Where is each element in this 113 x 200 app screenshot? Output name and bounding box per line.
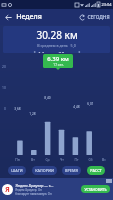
staticText: Пт bbox=[74, 157, 79, 162]
staticText: 1,28 bbox=[29, 112, 36, 116]
button[interactable]: ШАГИ bbox=[8, 166, 26, 175]
staticText: СЕГОДНЯ bbox=[87, 14, 110, 21]
button[interactable]: Previous week bbox=[30, 51, 38, 53]
staticText: 30.28 км bbox=[36, 28, 78, 42]
staticText: 6,01 bbox=[87, 102, 94, 106]
button[interactable]: ВРЕМЯ bbox=[62, 166, 81, 175]
button[interactable]: КАЛОРИИ bbox=[32, 166, 57, 175]
button[interactable]: 6.39 км bbox=[43, 54, 73, 68]
staticText: блокирует навязчивую. Он bbox=[15, 192, 52, 196]
button[interactable]: Back bbox=[0, 9, 16, 25]
staticText: Пн bbox=[15, 157, 20, 162]
staticText: Вт bbox=[31, 157, 35, 162]
staticText: Вс bbox=[102, 157, 106, 162]
staticText: Яндекс.Браузер — с… bbox=[15, 183, 54, 188]
staticText: РАССТ bbox=[90, 168, 102, 173]
staticText: Сб bbox=[88, 157, 93, 162]
staticText: 20 bbox=[2, 64, 6, 69]
staticText: ШАГИ bbox=[11, 168, 23, 173]
button[interactable]: Next week bbox=[75, 51, 83, 53]
staticText: 10 bbox=[2, 85, 6, 90]
staticText: 14 окт. - 20 окт. bbox=[38, 51, 75, 53]
button[interactable]: 30.28 км bbox=[3, 26, 110, 53]
button[interactable]: СЕГОДНЯ bbox=[77, 11, 113, 24]
staticText: КАЛОРИИ bbox=[35, 168, 54, 173]
staticText: Неделя bbox=[16, 12, 42, 22]
staticText: 0 bbox=[4, 106, 6, 111]
staticText: 23:04 bbox=[101, 2, 112, 7]
staticText: 17 окт. bbox=[53, 63, 64, 67]
staticText: Чт bbox=[60, 157, 64, 162]
staticText: Яндекс.Браузер. Он bbox=[15, 188, 42, 192]
staticText: ВРЕМЯ bbox=[65, 168, 78, 173]
staticText: Я bbox=[5, 185, 10, 195]
staticText: Ср bbox=[45, 157, 50, 162]
staticText: УСТАНОВИТЬ bbox=[84, 187, 107, 192]
staticText: 4,48 bbox=[73, 105, 80, 109]
staticText: 6.39 км bbox=[47, 55, 69, 63]
staticText: 8,40 bbox=[44, 96, 51, 100]
button[interactable]: УСТАНОВИТЬ bbox=[81, 185, 110, 193]
button[interactable]: РАССТ bbox=[87, 166, 105, 175]
staticText: В среднем в день 5,0 bbox=[37, 43, 76, 48]
staticText: 3,68 bbox=[14, 107, 21, 111]
